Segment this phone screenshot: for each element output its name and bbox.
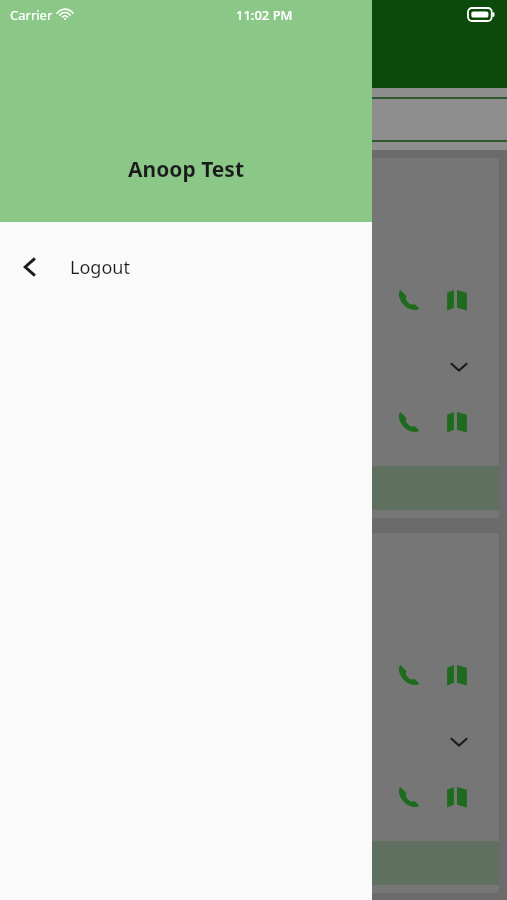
staticText: 11:02 PM — [236, 6, 293, 24]
button[interactable]: Expand — [444, 352, 474, 382]
button[interactable] — [8, 466, 499, 510]
button[interactable]: Expand — [444, 727, 474, 757]
button[interactable]: Back — [0, 222, 372, 312]
button[interactable]: Total : ₹150.0 — [8, 533, 499, 893]
button[interactable]: Map — [435, 653, 479, 697]
button[interactable]: Map — [435, 400, 479, 444]
staticText: Anoop Test — [0, 155, 372, 184]
button[interactable]: Call — [387, 653, 431, 697]
button[interactable]: Call — [387, 400, 431, 444]
button[interactable]: Map — [435, 775, 479, 819]
button[interactable]: Call — [387, 278, 431, 322]
staticText: Payment type: Online — [20, 203, 172, 223]
staticText: Logout — [70, 255, 130, 280]
button[interactable] — [8, 841, 499, 885]
other: Back — [18, 255, 42, 279]
button[interactable]: Call — [387, 775, 431, 819]
button[interactable]: Total : ₹50.0 — [8, 158, 499, 518]
button[interactable]: Map — [435, 278, 479, 322]
staticText: Carrier — [10, 6, 53, 24]
